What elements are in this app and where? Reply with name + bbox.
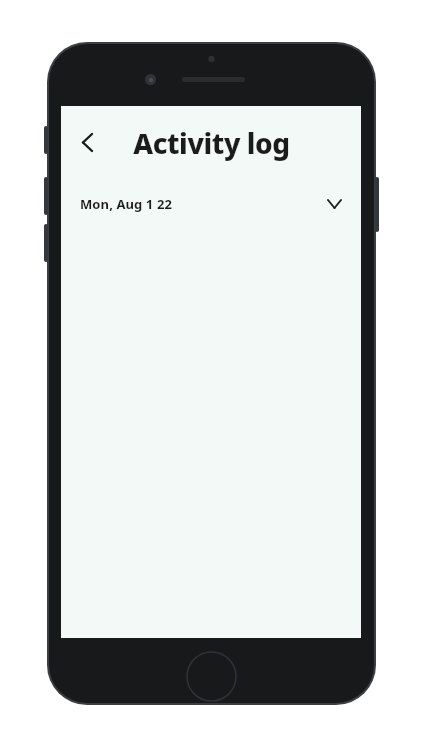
button[interactable]: Mon, Aug 1 22 xyxy=(61,178,361,230)
button[interactable]: Back xyxy=(67,122,107,162)
staticText: Activity log xyxy=(133,124,290,162)
button[interactable]: Home xyxy=(186,651,237,702)
staticText: Mon, Aug 1 22 xyxy=(80,195,172,213)
